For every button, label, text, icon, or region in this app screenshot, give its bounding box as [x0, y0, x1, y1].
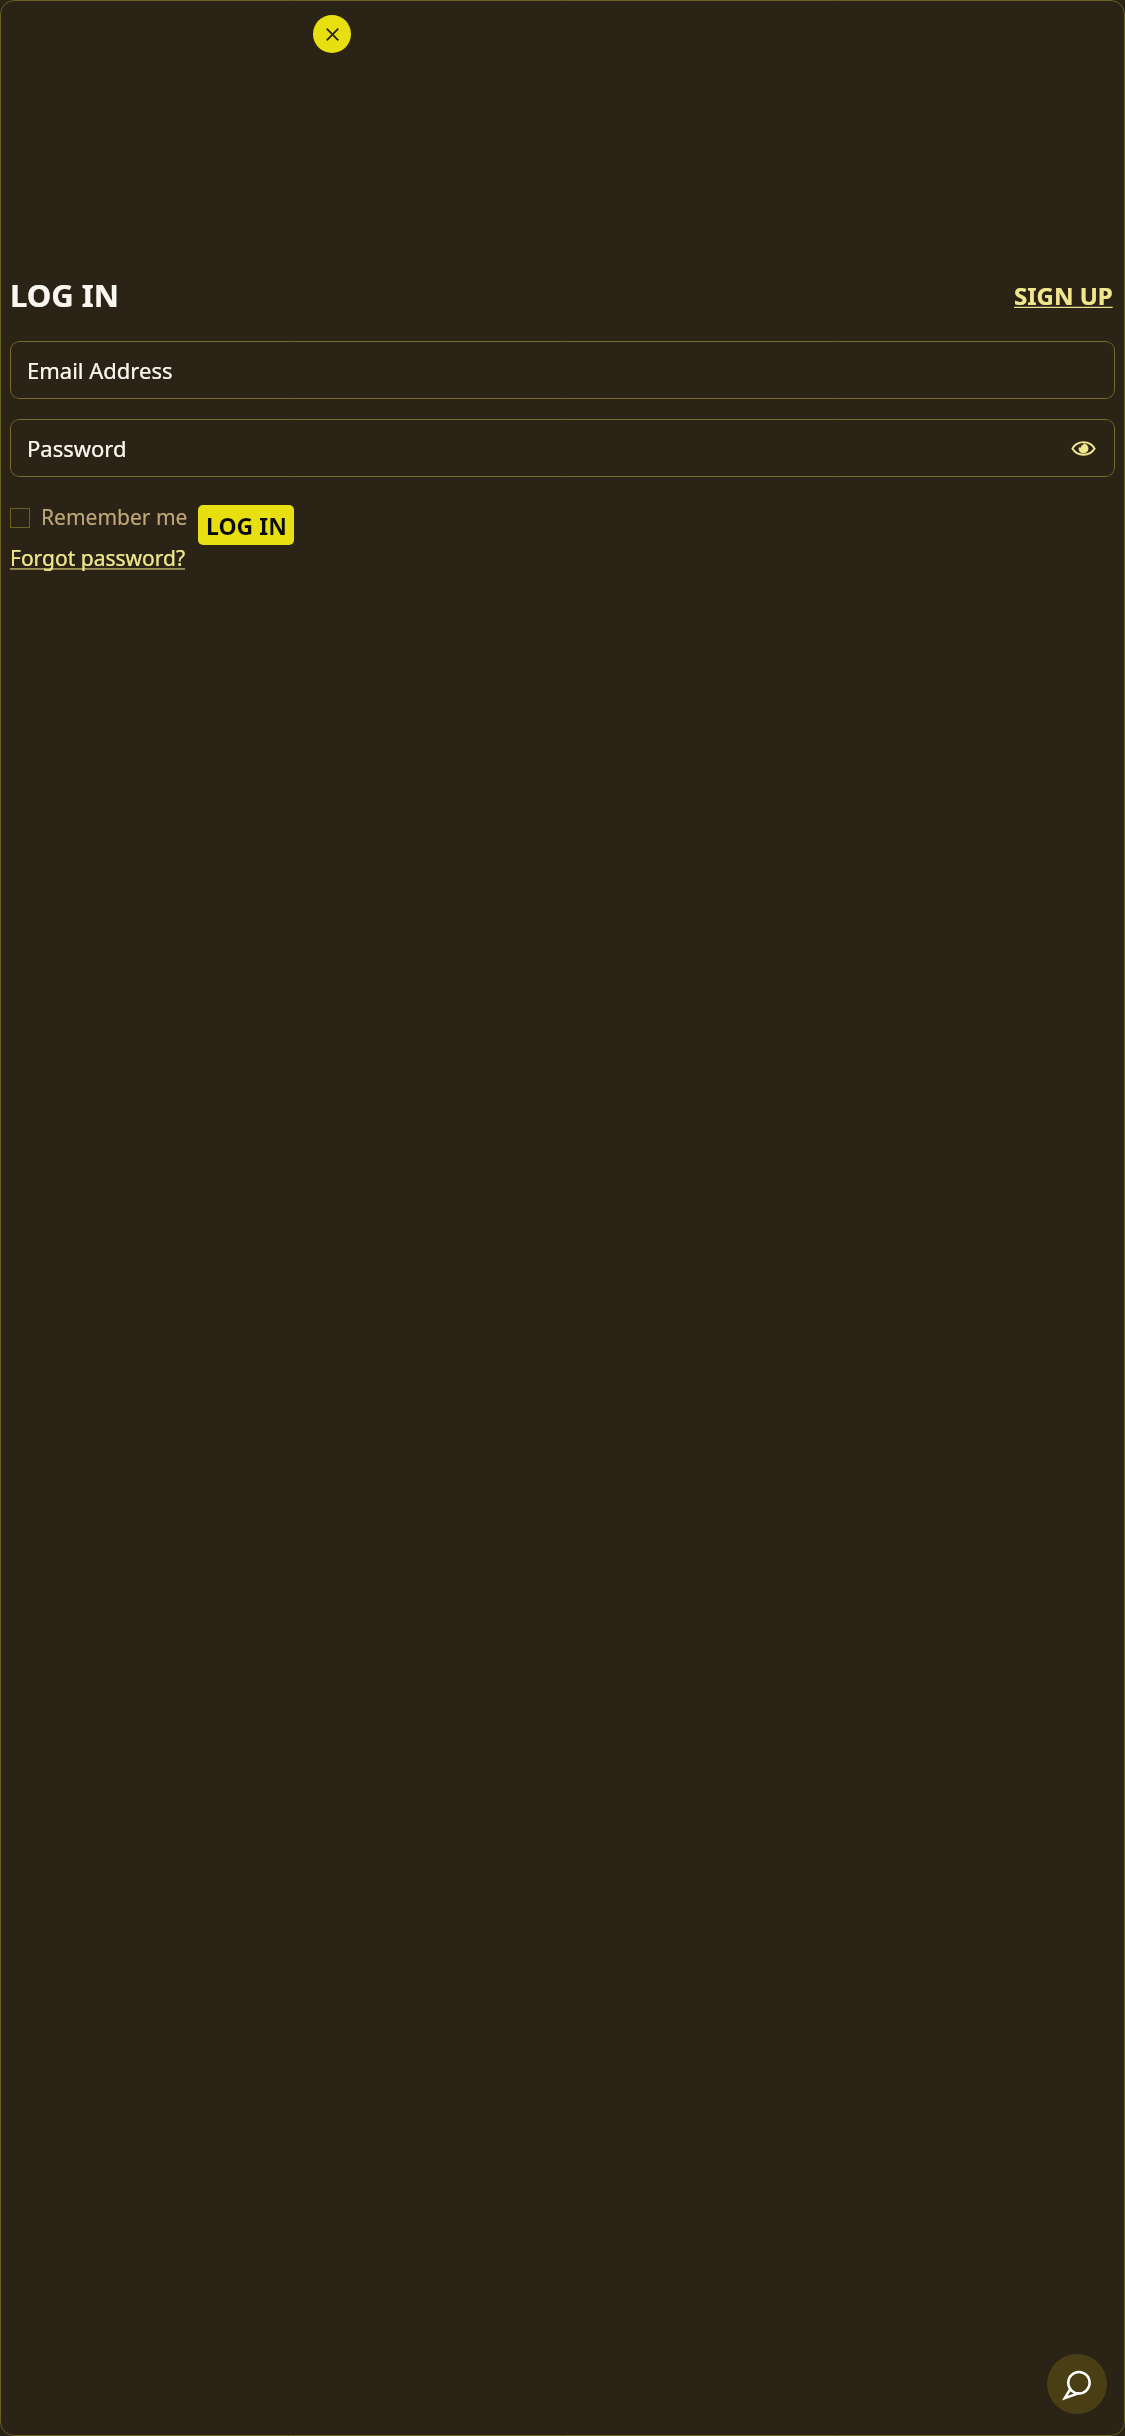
- button[interactable]: LOG IN: [198, 505, 294, 545]
- staticText: Password: [27, 433, 127, 463]
- staticText: LOG IN: [10, 274, 119, 316]
- button[interactable]: Close: [313, 15, 351, 53]
- staticText: SIGN UP: [1014, 279, 1113, 312]
- button[interactable]: SIGN UP: [1012, 277, 1115, 314]
- button[interactable]: Email Address: [10, 341, 1115, 399]
- button[interactable]: Forgot password?: [10, 544, 186, 573]
- staticText: LOG IN: [206, 510, 287, 541]
- button[interactable]: Remember me: [10, 503, 188, 532]
- staticText: Remember me: [41, 503, 188, 532]
- button[interactable]: Password: [10, 419, 1115, 477]
- button[interactable]: Show password: [1063, 428, 1103, 468]
- staticText: Email Address: [27, 355, 173, 385]
- staticText: Forgot password?: [10, 544, 186, 573]
- button[interactable]: Chat support: [1047, 2354, 1107, 2414]
